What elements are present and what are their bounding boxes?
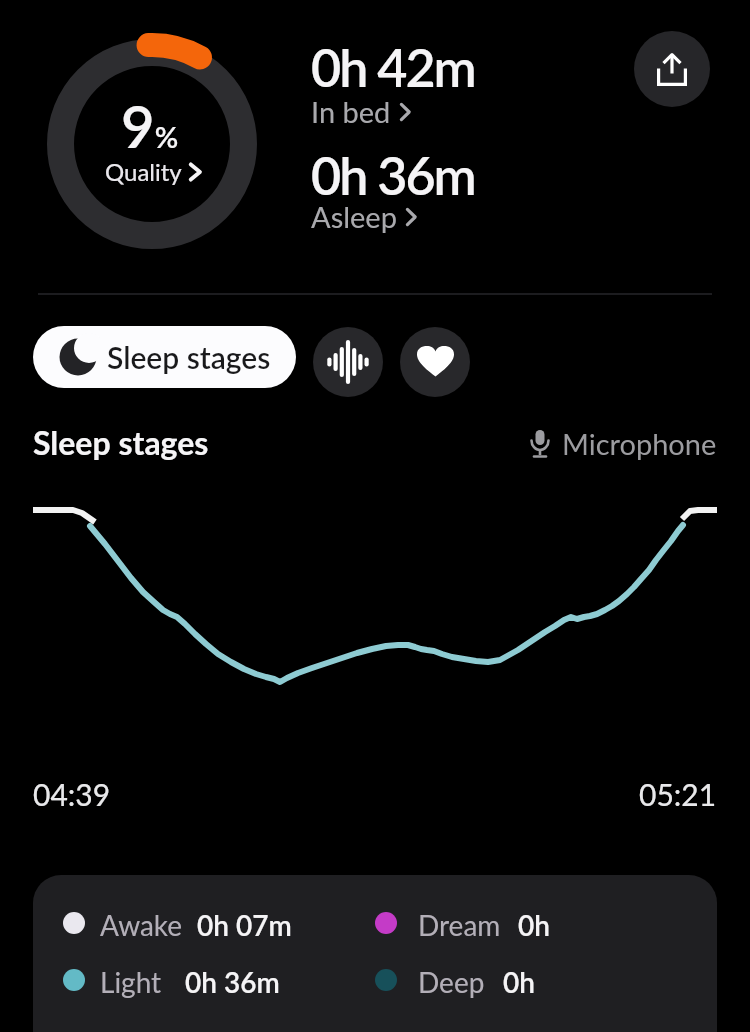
staticText: Microphone <box>562 426 717 461</box>
staticText: 04:39 <box>33 776 111 812</box>
staticText: 0h 42m <box>311 36 475 98</box>
staticText: Dream <box>418 908 501 942</box>
staticText: 0h <box>518 908 550 942</box>
button[interactable] <box>313 327 383 397</box>
button[interactable]: Microphone <box>528 426 717 461</box>
staticText: Light <box>100 965 162 999</box>
staticText: Sleep stages <box>107 339 271 375</box>
staticText: In bed <box>311 94 391 129</box>
button[interactable] <box>634 31 710 107</box>
button[interactable] <box>400 327 470 397</box>
staticText: 0h <box>503 965 535 999</box>
staticText: 0h 36m <box>185 965 280 999</box>
staticText: 0h 36m <box>311 144 475 206</box>
button[interactable]: Asleep <box>311 199 417 234</box>
staticText: Quality <box>105 157 182 186</box>
staticText: Asleep <box>311 199 397 234</box>
staticText: Deep <box>418 965 485 999</box>
button[interactable]: 9% <box>47 39 257 249</box>
button[interactable]: Sleep stages <box>33 326 296 388</box>
staticText: 0h 07m <box>197 908 292 942</box>
button[interactable]: In bed <box>311 94 411 129</box>
staticText: Awake <box>100 908 183 942</box>
staticText: 9% <box>121 91 179 161</box>
staticText: Sleep stages <box>33 423 209 461</box>
staticText: 05:21 <box>639 776 717 812</box>
